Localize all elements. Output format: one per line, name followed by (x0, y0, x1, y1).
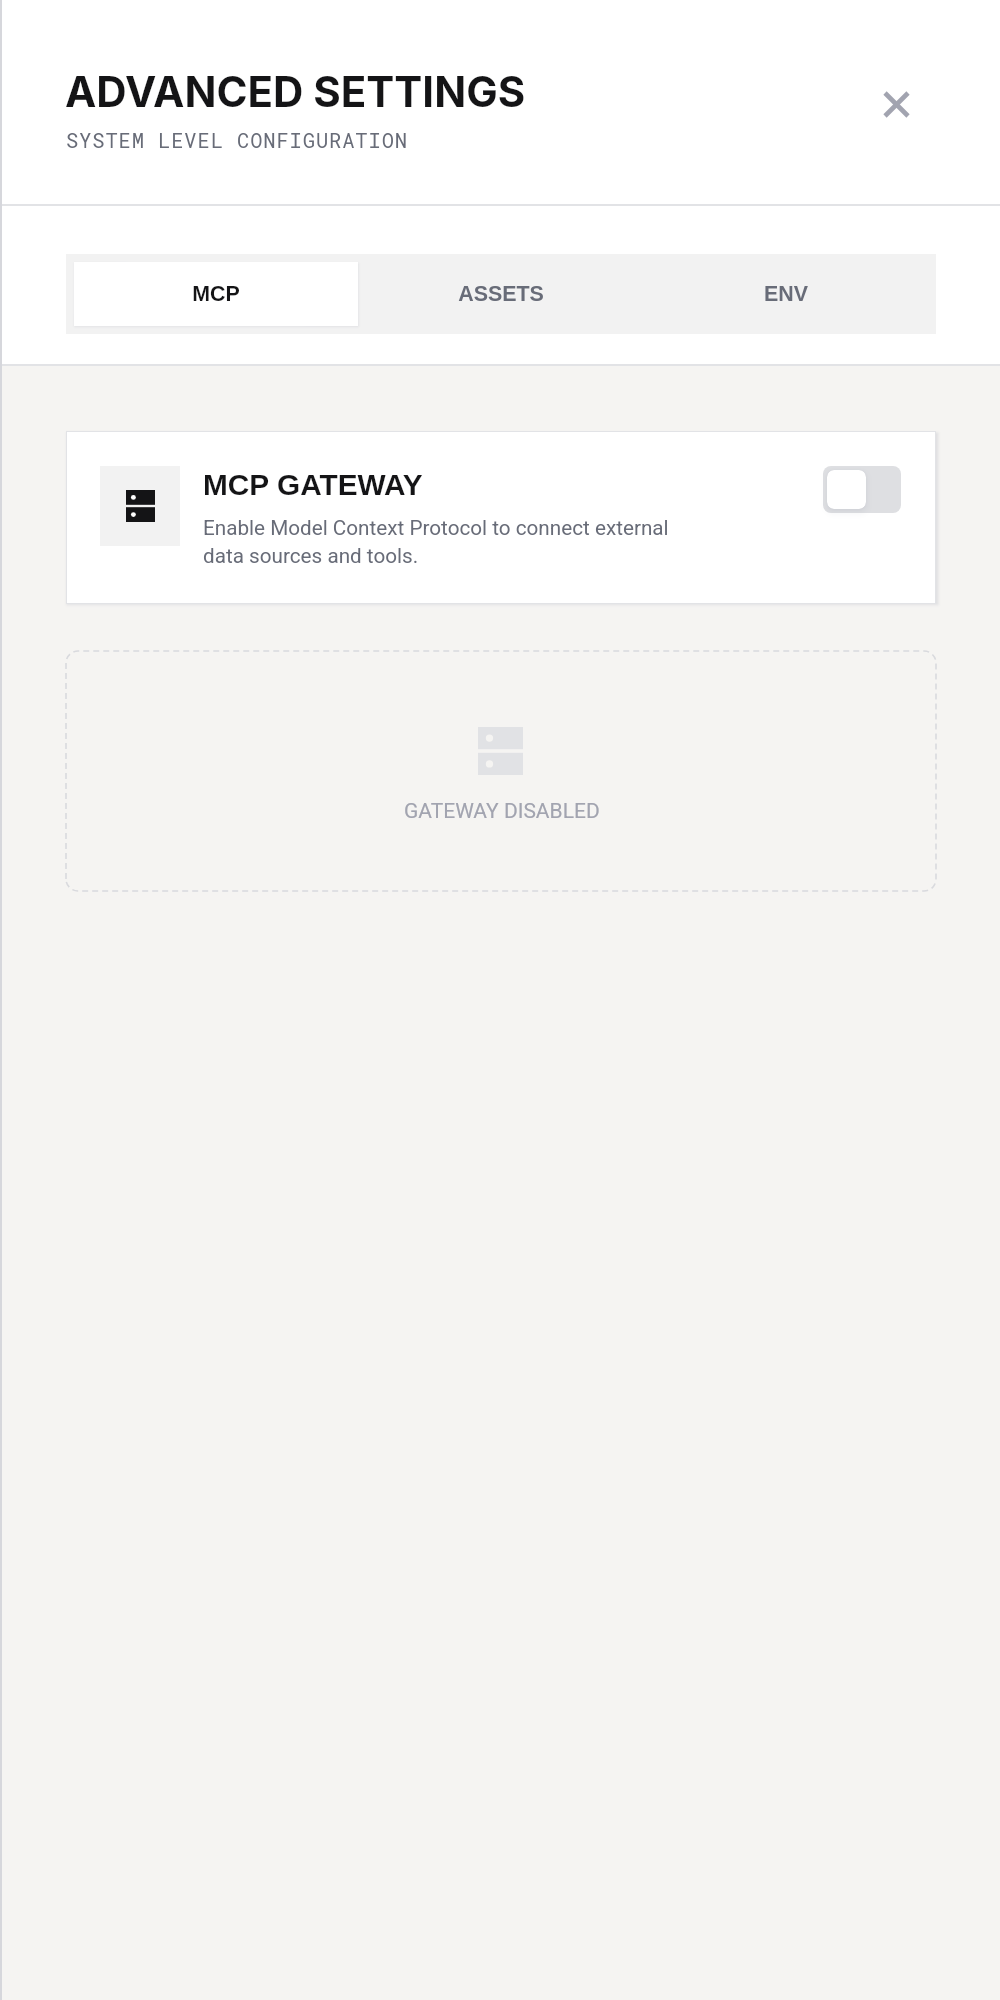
staticText: ENV (764, 282, 808, 306)
button[interactable]: ASSETS (358, 262, 643, 326)
button[interactable]: ENV (643, 262, 928, 326)
staticText: GATEWAY DISABLED (404, 799, 600, 824)
staticText: ADVANCED SETTINGS (65, 66, 526, 117)
staticText: ASSETS (458, 282, 544, 306)
button[interactable]: Toggle MCP Gateway (823, 466, 901, 513)
button[interactable]: GATEWAY DISABLED (66, 651, 936, 891)
staticText: SYSTEM LEVEL CONFIGURATION (66, 127, 408, 154)
button[interactable]: MCP GATEWAY (66, 431, 936, 604)
staticText: MCP GATEWAY (203, 468, 423, 501)
button[interactable]: MCP (74, 262, 358, 326)
staticText: MCP (192, 282, 240, 306)
button[interactable]: Close (862, 70, 930, 138)
staticText: Enable Model Context Protocol to connect… (203, 516, 693, 568)
